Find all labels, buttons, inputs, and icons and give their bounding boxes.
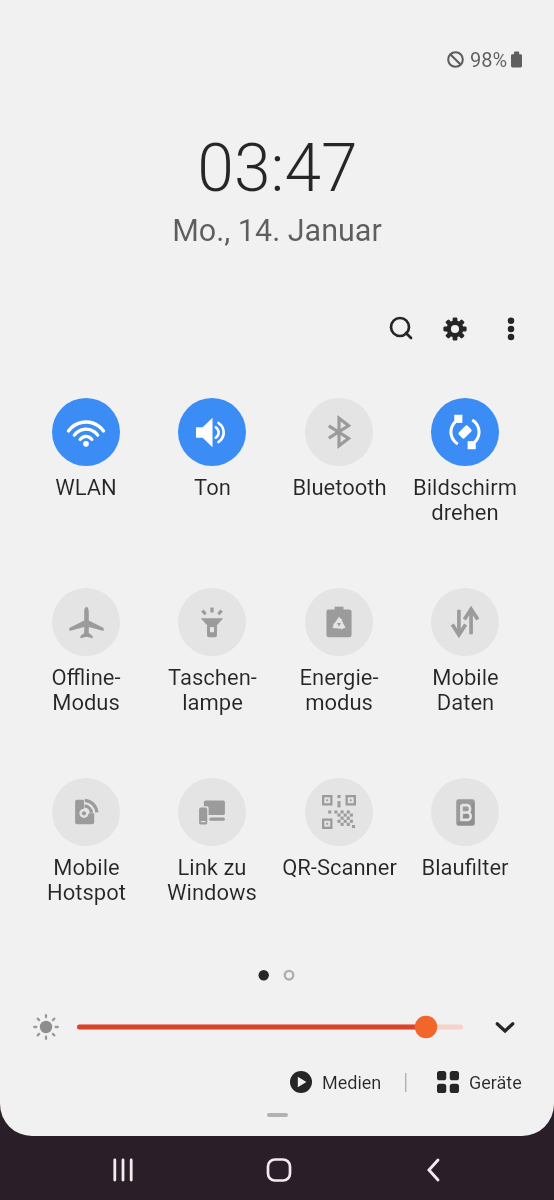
button[interactable]: Mobile Daten [402, 588, 528, 716]
button[interactable]: Link zu Windows [149, 778, 275, 906]
staticText: Mo., 14. Januar [172, 213, 382, 249]
staticText: Taschen- lampe [168, 665, 257, 716]
button[interactable]: Recent apps [93, 1140, 153, 1200]
staticText: Link zu Windows [167, 855, 257, 906]
button[interactable]: Ton [149, 398, 275, 501]
button[interactable]: Mobile Hotspot [23, 778, 149, 906]
staticText: WLAN [55, 475, 117, 501]
button[interactable]: Search [386, 313, 414, 341]
staticText: QR-Scanner [282, 855, 397, 881]
button[interactable]: Blaufilter [402, 778, 528, 881]
staticText: 98% [470, 48, 508, 71]
button[interactable]: Home [249, 1140, 309, 1200]
button[interactable]: Expand [489, 1011, 521, 1043]
button[interactable]: Back [404, 1140, 464, 1200]
button[interactable]: More options [497, 314, 525, 342]
button[interactable]: WLAN [23, 398, 149, 501]
staticText: Blaufilter [421, 855, 509, 881]
staticText: Bildschirm drehen [413, 475, 517, 526]
button[interactable]: Geräte [437, 1071, 522, 1093]
button[interactable]: Bildschirm drehen [402, 398, 528, 526]
staticText: Mobile Daten [432, 665, 499, 716]
button[interactable]: Medien [290, 1071, 382, 1093]
staticText: Geräte [469, 1072, 522, 1093]
button[interactable]: Energie- modus [276, 588, 402, 716]
staticText: Bluetooth [292, 475, 387, 501]
staticText: Energie- modus [299, 665, 379, 716]
button[interactable]: Offline- Modus [23, 588, 149, 716]
staticText: Mobile Hotspot [47, 855, 126, 906]
button[interactable]: Taschen- lampe [149, 588, 275, 716]
button[interactable]: Settings [441, 315, 469, 343]
button[interactable]: Bluetooth [276, 398, 402, 501]
staticText: 03:47 [197, 130, 358, 207]
staticText: Offline- Modus [51, 665, 121, 716]
staticText: Medien [322, 1072, 382, 1093]
staticText: Ton [194, 475, 231, 501]
button[interactable]: QR-Scanner [276, 778, 402, 881]
